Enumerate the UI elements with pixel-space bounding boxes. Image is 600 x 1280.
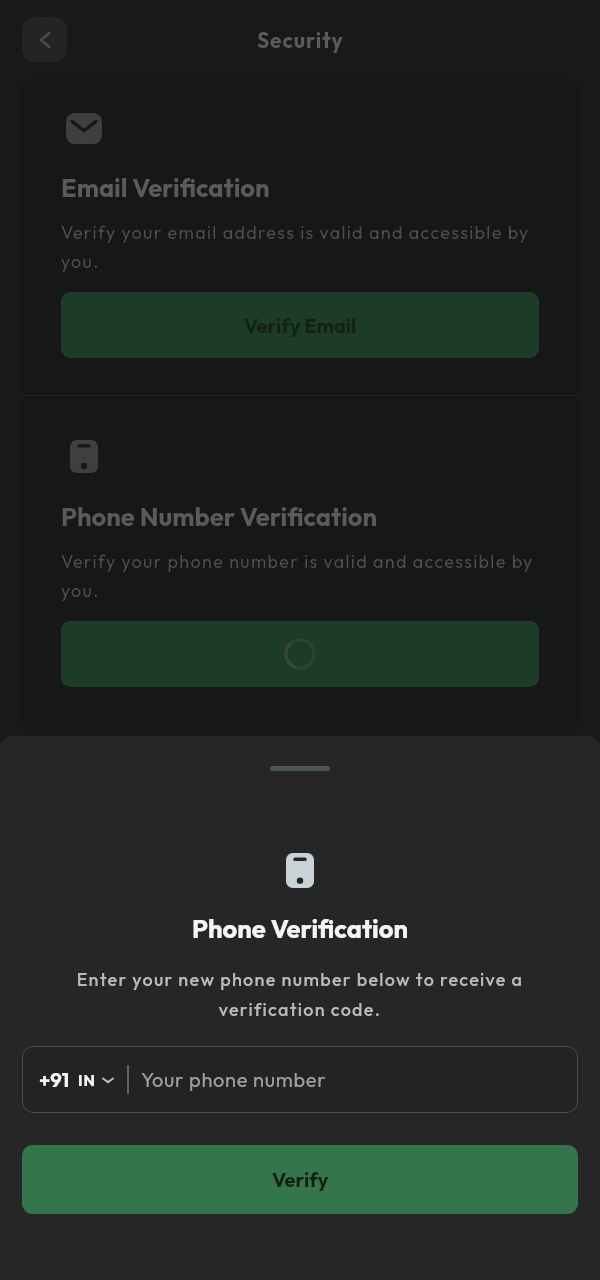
staticText: Phone Number Verification	[61, 500, 378, 532]
staticText: Verify Email	[244, 313, 357, 338]
button[interactable]: Back	[22, 17, 67, 62]
staticText: Verify	[272, 1167, 329, 1192]
staticText: Verify your phone number is valid and ac…	[61, 550, 539, 602]
staticText: Email Verification	[61, 171, 270, 203]
staticText: Phone Verification	[192, 912, 408, 944]
staticText: Enter your new phone number below to rec…	[60, 968, 540, 1020]
staticText: Your phone number	[141, 1067, 327, 1092]
staticText: IN	[78, 1070, 96, 1090]
button[interactable]: Verify	[22, 1145, 578, 1214]
staticText: +91	[39, 1067, 70, 1092]
button[interactable]: Verify Email	[61, 292, 539, 358]
button[interactable]: +91	[22, 1046, 578, 1113]
staticText: Security	[257, 27, 344, 53]
staticText: Verify your email address is valid and a…	[61, 221, 539, 273]
